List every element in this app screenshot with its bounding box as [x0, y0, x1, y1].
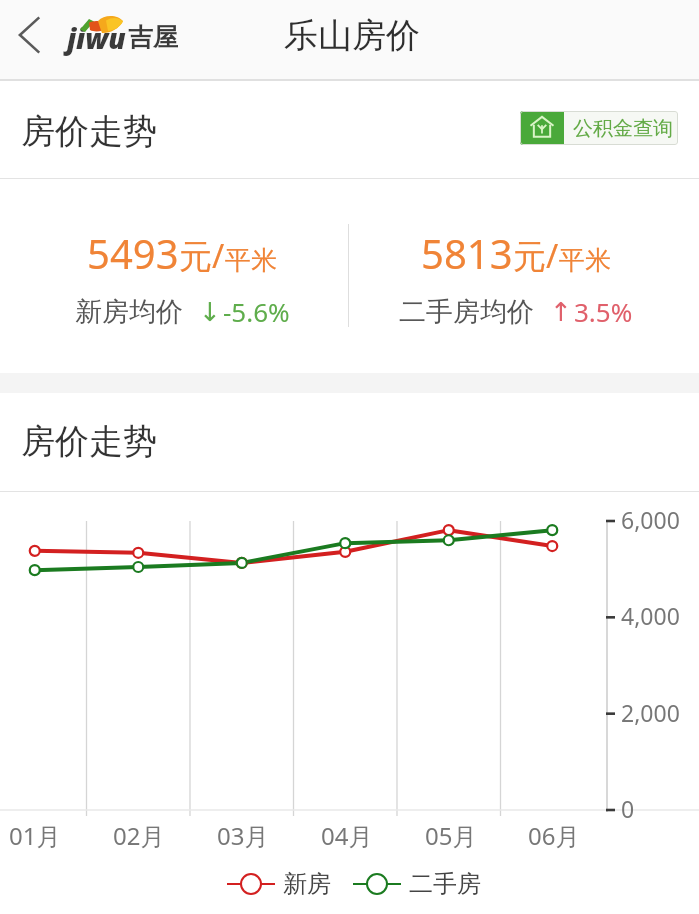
staticText: 房价走势: [21, 110, 157, 153]
staticText: 公积金查询: [573, 116, 673, 141]
staticText: 5493: [87, 226, 179, 280]
staticText: jiwu: [67, 19, 126, 57]
staticText: 元: [513, 236, 546, 278]
staticText: 吉屋: [128, 22, 178, 53]
button[interactable]: 二手房: [353, 869, 481, 899]
staticText: 4,000: [621, 600, 680, 631]
staticText: 2,000: [621, 697, 680, 728]
staticText: 5813: [421, 226, 513, 280]
staticText: 3.5%: [574, 294, 633, 329]
staticText: 0: [621, 793, 635, 824]
staticText: 二手房: [409, 869, 481, 899]
staticText: 元: [179, 236, 212, 278]
staticText: /: [546, 233, 559, 278]
staticText: 03月: [217, 819, 269, 852]
staticText: ↓: [199, 297, 221, 327]
staticText: 房价走势: [21, 420, 157, 463]
button[interactable]: Back: [8, 13, 52, 57]
staticText: 平米: [225, 244, 277, 277]
staticText: 6,000: [621, 504, 680, 535]
staticText: 05月: [425, 819, 477, 852]
staticText: -5.6%: [223, 294, 290, 329]
button[interactable]: 公积金查询: [520, 111, 678, 145]
staticText: 新房均价: [75, 295, 183, 329]
staticText: 06月: [528, 819, 580, 852]
staticText: 平米: [559, 244, 611, 277]
staticText: 新房: [283, 869, 331, 899]
staticText: 乐山房价: [284, 14, 420, 57]
staticText: 二手房均价: [399, 295, 534, 329]
staticText: 02月: [113, 819, 165, 852]
staticText: ↑: [550, 297, 572, 327]
staticText: 01月: [9, 819, 61, 852]
button[interactable]: 新房: [227, 869, 331, 899]
staticText: /: [212, 233, 225, 278]
staticText: 04月: [321, 819, 373, 852]
